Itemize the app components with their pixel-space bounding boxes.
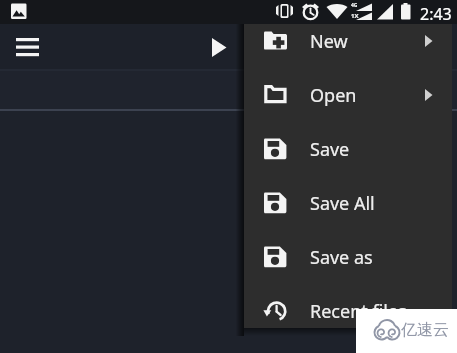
staticText: 1X bbox=[351, 12, 359, 20]
staticText: 4G bbox=[351, 2, 358, 9]
staticText: Save as bbox=[310, 245, 373, 270]
button[interactable]: Save as bbox=[244, 230, 452, 284]
staticText: 2:43 bbox=[420, 3, 452, 25]
staticText: Recent files bbox=[310, 299, 407, 324]
button[interactable]: Save All bbox=[244, 176, 452, 230]
staticText: Save All bbox=[310, 191, 375, 216]
button[interactable]: Run bbox=[208, 36, 232, 60]
staticText: New bbox=[310, 29, 348, 54]
staticText: Open bbox=[310, 83, 357, 108]
button[interactable]: Open bbox=[244, 68, 452, 122]
button[interactable]: Save bbox=[244, 122, 452, 176]
staticText: 亿速云 bbox=[401, 320, 449, 340]
button[interactable]: Recent files bbox=[244, 284, 452, 338]
button[interactable]: New bbox=[244, 14, 452, 68]
staticText: Save bbox=[310, 137, 350, 162]
button[interactable]: Navigation menu bbox=[15, 37, 40, 57]
